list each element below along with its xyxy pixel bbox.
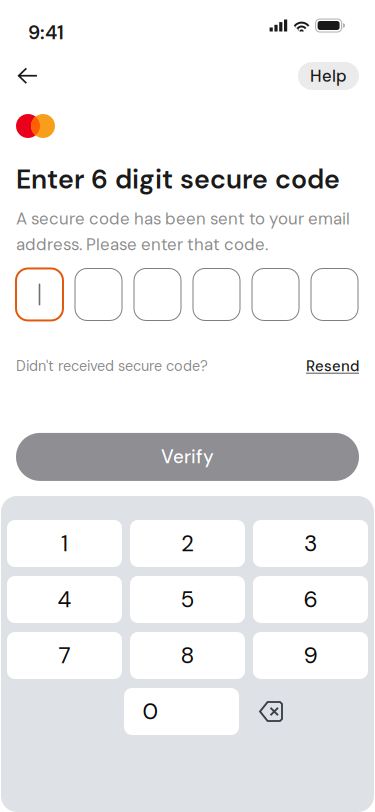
button[interactable]: 3: [253, 520, 368, 567]
button[interactable]: Verify: [16, 433, 359, 481]
button[interactable]: 7: [7, 632, 122, 679]
staticText: Verify: [161, 445, 214, 469]
button[interactable]: Code digit: [311, 268, 358, 320]
button[interactable]: Resend: [306, 356, 359, 376]
button[interactable]: 4: [7, 576, 122, 623]
staticText: 8: [180, 641, 194, 670]
button[interactable]: Back: [7, 59, 49, 93]
staticText: Resend: [306, 356, 359, 376]
button[interactable]: 2: [130, 520, 245, 567]
button[interactable]: 9: [253, 632, 368, 679]
button[interactable]: Delete: [247, 688, 374, 735]
staticText: 6: [303, 585, 317, 614]
staticText: Enter 6 digit secure code: [16, 162, 340, 197]
staticText: 9: [303, 641, 317, 670]
staticText: 3: [304, 529, 317, 558]
button[interactable]: 0: [124, 688, 239, 735]
staticText: 1: [61, 529, 68, 558]
staticText: 9:41: [28, 20, 64, 45]
staticText: Help: [310, 65, 347, 87]
staticText: 7: [58, 641, 70, 670]
staticText: 2: [181, 529, 194, 558]
staticText: A secure code has been sent to your emai…: [16, 208, 350, 255]
staticText: Didn't received secure code?: [16, 357, 208, 375]
button[interactable]: Code digit: [193, 268, 240, 320]
staticText: 4: [57, 585, 71, 614]
button[interactable]: 1: [7, 520, 122, 567]
button[interactable]: Code digit: [75, 268, 122, 320]
button[interactable]: Code digit: [134, 268, 181, 320]
button[interactable]: Code digit: [16, 268, 63, 320]
button[interactable]: 6: [253, 576, 368, 623]
button[interactable]: Help: [298, 62, 359, 90]
button[interactable]: Code digit: [252, 268, 299, 320]
button[interactable]: 8: [130, 632, 245, 679]
button[interactable]: 5: [130, 576, 245, 623]
staticText: 0: [142, 697, 158, 726]
staticText: 5: [180, 585, 194, 614]
